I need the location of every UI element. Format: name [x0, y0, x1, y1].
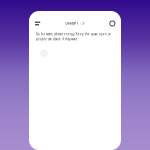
button[interactable]: ChatGPT: [65, 22, 85, 25]
staticText: 5: [79, 22, 81, 25]
button[interactable]: Sidebar: [35, 20, 44, 27]
staticText: ChatGPT: [65, 22, 78, 25]
staticText: Go for warm, vibrant energy. Keep the sp…: [36, 32, 111, 41]
button[interactable]: New chat: [106, 21, 115, 26]
